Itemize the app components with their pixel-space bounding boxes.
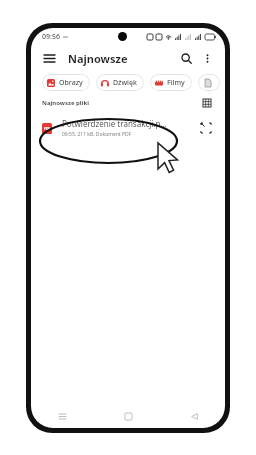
- staticText: 09:55, 211 kB, Dokument PDF: [62, 131, 132, 138]
- button[interactable]: Ostatnie: [53, 407, 71, 425]
- button[interactable]: Ekran główny: [119, 407, 137, 425]
- button[interactable]: Rozwiń: [198, 120, 214, 136]
- staticText: Potwierdzenie transakcji.p…: [62, 118, 167, 129]
- staticText: Obrazy: [59, 78, 83, 88]
- button[interactable]: Szukaj: [177, 49, 195, 67]
- button[interactable]: Widok siatki: [200, 96, 214, 110]
- button[interactable]: Dźwięk: [96, 74, 144, 91]
- button[interactable]: Filmy: [150, 74, 192, 91]
- staticText: Filmy: [167, 78, 185, 88]
- button[interactable]: PDF: [31, 113, 225, 143]
- staticText: 09:56: [42, 32, 60, 42]
- staticText: Dźwięk: [113, 78, 137, 88]
- button[interactable]: Wstecz: [185, 407, 203, 425]
- button[interactable]: Obrazy: [42, 74, 90, 91]
- staticText: PDF: [44, 127, 51, 131]
- staticText: Najnowsze pliki: [42, 99, 89, 107]
- button[interactable]: Dokumenty: [198, 74, 220, 91]
- button[interactable]: Menu: [40, 49, 58, 67]
- button[interactable]: Więcej opcji: [198, 49, 216, 67]
- staticText: Najnowsze: [68, 51, 128, 66]
